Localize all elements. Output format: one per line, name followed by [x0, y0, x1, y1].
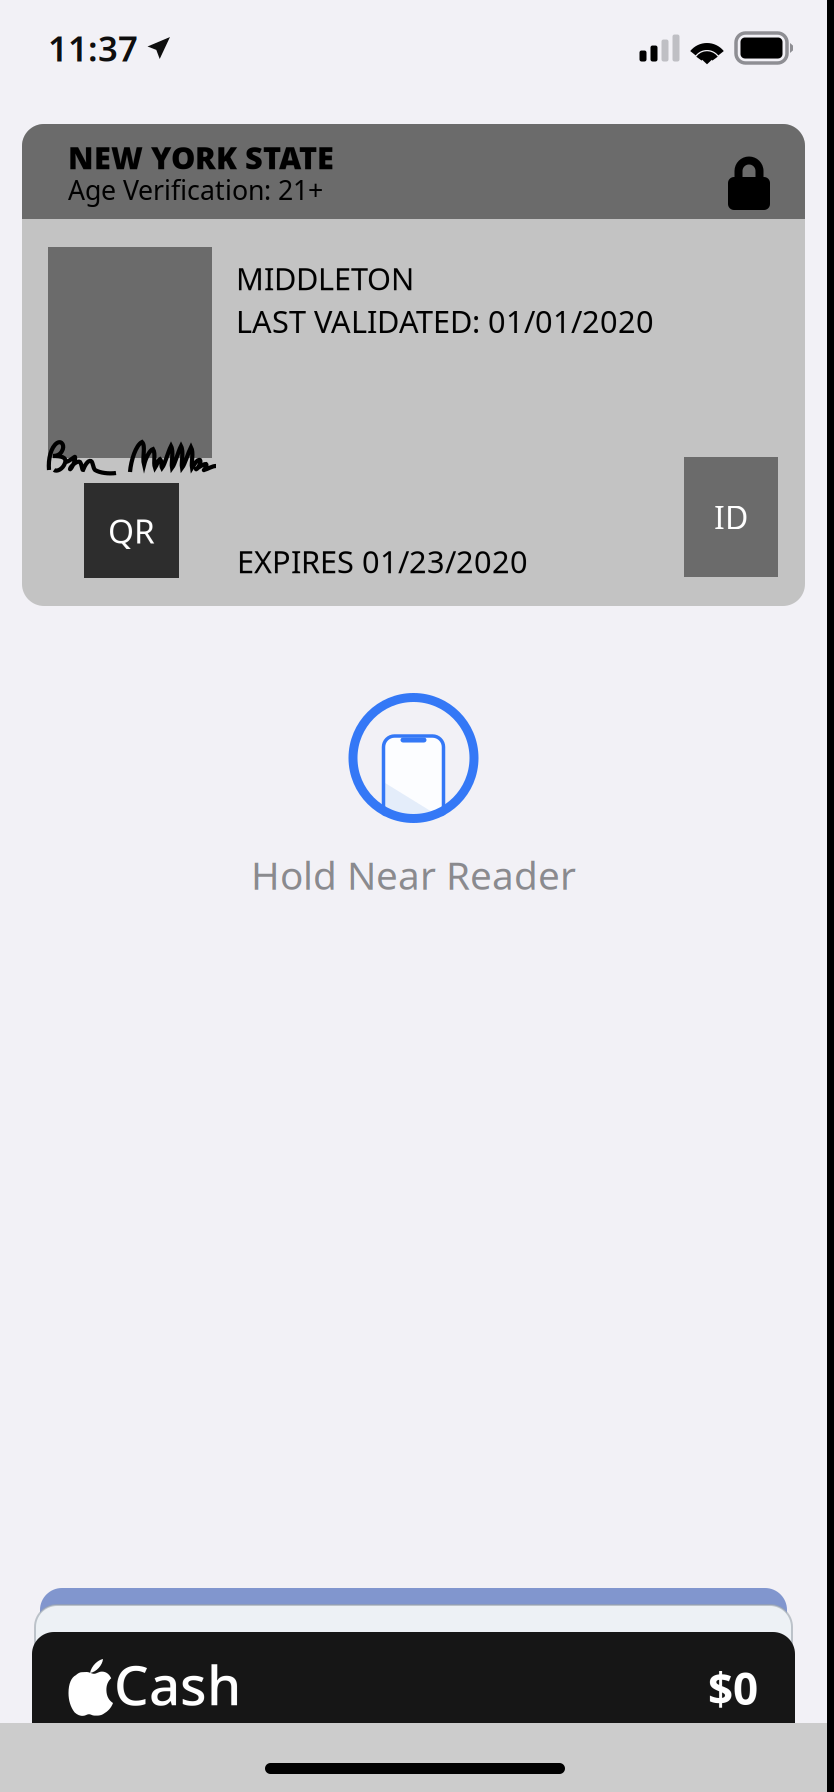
staticText: Age Verification: 21+: [68, 172, 323, 207]
staticText: 11:37: [48, 25, 138, 71]
button[interactable]: Cash: [32, 1632, 795, 1762]
button[interactable]: Pass: [35, 1605, 792, 1716]
staticText: EXPIRES 01/23/2020: [237, 541, 528, 582]
staticText: LAST VALIDATED: 01/01/2020: [236, 301, 654, 341]
button[interactable]: Pass: [40, 1588, 787, 1716]
staticText: MIDDLETON: [236, 258, 414, 299]
button[interactable]: New York State age verification pass: [22, 124, 805, 606]
staticText: $0: [708, 1659, 758, 1717]
staticText: Hold Near Reader: [251, 849, 576, 900]
staticText: ID: [714, 496, 748, 538]
staticText: NEW YORK STATE: [68, 137, 334, 178]
button[interactable]: ID: [684, 457, 778, 577]
button[interactable]: QR: [84, 483, 179, 578]
staticText: Cash: [114, 1648, 241, 1720]
staticText: QR: [108, 508, 155, 553]
